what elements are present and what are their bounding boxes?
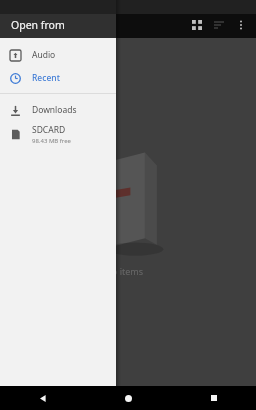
button[interactable]: Downloads [0, 98, 116, 121]
button[interactable]: Grid view [186, 14, 208, 36]
staticText: Downloads [32, 104, 77, 116]
button[interactable]: SDCARD [0, 121, 116, 147]
button[interactable]: Recent [0, 66, 116, 89]
staticText: 98.43 MB free [32, 137, 71, 145]
button[interactable]: Recents [171, 386, 256, 410]
button[interactable]: Back [0, 386, 86, 410]
button[interactable]: Audio [0, 43, 116, 66]
staticText: Recent [32, 72, 60, 84]
staticText: Open from [11, 18, 65, 32]
button[interactable]: Home [86, 386, 171, 410]
staticText: Audio [32, 49, 56, 61]
staticText: SDCARD [32, 124, 66, 136]
button[interactable]: Sort [208, 14, 230, 36]
button[interactable]: More options [230, 14, 252, 36]
staticText: No items [105, 265, 143, 277]
